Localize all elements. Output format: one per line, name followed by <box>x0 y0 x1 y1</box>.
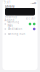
staticText: 9:41 <box>4 1 11 4</box>
staticText: Morning Walk <box>7 20 19 28</box>
staticText: Meditation <box>7 27 22 31</box>
staticText: Library <box>5 5 14 8</box>
staticText: ▁▃▅ <box>30 1 36 4</box>
button[interactable]: Meditation <box>4 26 35 31</box>
staticText: See All <box>25 17 35 20</box>
button[interactable]: Morning Walk <box>4 21 35 26</box>
staticText: Evening Run <box>7 32 25 36</box>
staticText: Recently Added <box>4 15 16 22</box>
button[interactable]: Evening Run <box>4 31 35 36</box>
